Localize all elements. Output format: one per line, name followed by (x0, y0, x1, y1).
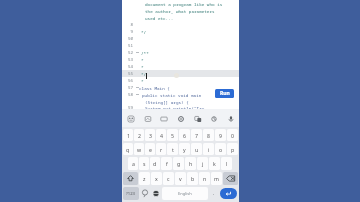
staticText: d (153, 160, 157, 167)
staticText: 51 (122, 43, 133, 49)
button[interactable]: 4 (156, 129, 166, 141)
staticText: 50 (122, 36, 133, 42)
button[interactable]: d (150, 157, 160, 170)
button[interactable]: 0 (227, 129, 238, 141)
staticText: class Main { (139, 85, 170, 91)
button[interactable]: Sticker (142, 113, 153, 124)
button[interactable]: r (156, 143, 166, 155)
staticText: * (141, 57, 144, 63)
staticText: z (143, 175, 146, 182)
button[interactable]: w (134, 143, 144, 155)
staticText: System.out.println("Try (145, 105, 205, 109)
staticText: m (214, 175, 219, 182)
button[interactable]: Enter (220, 188, 237, 199)
staticText: /** (141, 50, 149, 56)
button[interactable]: u (191, 143, 202, 155)
staticText: s (143, 160, 146, 167)
button[interactable]: m (211, 172, 222, 185)
button[interactable]: 9 (215, 129, 226, 141)
staticText: 55 (122, 71, 133, 77)
button[interactable]: 7 (191, 129, 202, 141)
staticText: h (189, 160, 193, 167)
button[interactable]: Backspace (223, 172, 238, 185)
staticText: */ (141, 71, 147, 77)
button[interactable]: 5 (167, 129, 178, 141)
button[interactable]: 2 (134, 129, 144, 141)
button[interactable]: 1 (123, 129, 133, 141)
button[interactable]: o (215, 143, 226, 155)
staticText: public static void main (142, 92, 202, 98)
staticText: 5 (171, 132, 174, 139)
button[interactable]: 3 (145, 129, 155, 141)
button[interactable]: p (227, 143, 238, 155)
staticText: 59 (122, 105, 133, 109)
button[interactable]: Settings (175, 113, 186, 124)
button[interactable]: j (197, 157, 208, 170)
staticText: 6 (183, 132, 186, 139)
button[interactable]: Run (215, 89, 234, 98)
staticText: 57 (122, 85, 133, 91)
button[interactable]: s (139, 157, 149, 170)
staticText: 7 (195, 132, 198, 139)
button[interactable]: 8 (203, 129, 214, 141)
staticText: e (149, 146, 152, 153)
staticText: b (191, 175, 195, 182)
staticText: (String[] args) { (145, 99, 189, 105)
button[interactable]: Emoji (125, 113, 136, 124)
staticText: 1 (127, 132, 130, 139)
button[interactable]: Period (209, 187, 218, 200)
button[interactable]: e (145, 143, 155, 155)
staticText: 8 (122, 22, 133, 28)
staticText: r (160, 146, 163, 153)
staticText: . (213, 190, 215, 197)
staticText: t (172, 146, 174, 153)
staticText: 56 (122, 78, 133, 84)
staticText: j (202, 160, 204, 167)
staticText: 0 (231, 132, 234, 139)
button[interactable]: q (123, 143, 133, 155)
button[interactable]: a (128, 157, 138, 170)
button[interactable]: Change language (151, 187, 161, 200)
button[interactable]: z (139, 172, 150, 185)
staticText: document a program like who is (145, 1, 223, 7)
button[interactable]: 6 (179, 129, 190, 141)
button[interactable]: v (175, 172, 186, 185)
staticText: 52 (122, 50, 133, 56)
button[interactable]: Shift (123, 172, 138, 185)
button[interactable]: n (199, 172, 210, 185)
staticText: ?123 (126, 191, 136, 197)
button[interactable]: x (151, 172, 162, 185)
button[interactable]: f (161, 157, 172, 170)
button[interactable]: k (209, 157, 220, 170)
staticText: 9 (122, 29, 133, 35)
button[interactable]: g (173, 157, 184, 170)
button[interactable]: Comma (140, 187, 150, 200)
button[interactable]: h (185, 157, 196, 170)
button[interactable]: English (162, 187, 208, 200)
button[interactable]: Translate (192, 113, 203, 124)
button[interactable]: t (167, 143, 178, 155)
staticText: i (208, 146, 210, 153)
button[interactable]: Clipboard (208, 113, 219, 124)
staticText: n (203, 175, 207, 182)
staticText: * (141, 64, 144, 70)
button[interactable]: l (221, 157, 232, 170)
staticText: l (226, 160, 228, 167)
staticText: */ (141, 29, 147, 35)
staticText: f (166, 160, 168, 167)
staticText: * (141, 78, 144, 84)
button[interactable]: c (163, 172, 174, 185)
button[interactable]: GIF (158, 113, 169, 124)
staticText: k (213, 160, 216, 167)
button[interactable]: Voice input (225, 113, 236, 124)
button[interactable]: ?123 (123, 187, 139, 200)
staticText: p (231, 146, 235, 153)
staticText: v (179, 175, 182, 182)
button[interactable]: i (203, 143, 214, 155)
button[interactable]: b (187, 172, 198, 185)
staticText: 54 (122, 64, 133, 70)
button[interactable]: y (179, 143, 190, 155)
